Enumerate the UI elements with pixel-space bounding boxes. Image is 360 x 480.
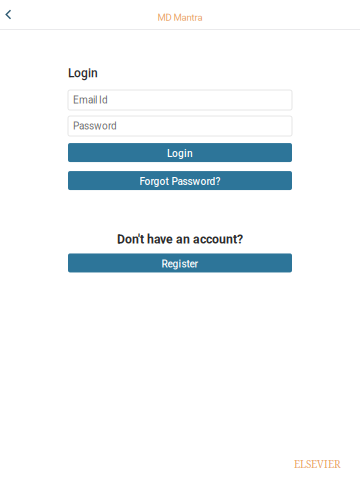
staticText: Email Id — [73, 94, 108, 106]
button[interactable]: Password — [68, 116, 292, 136]
staticText: Register — [161, 258, 198, 270]
staticText: Login — [167, 148, 193, 159]
staticText: ELSEVIER — [294, 457, 341, 471]
button[interactable]: Register — [68, 253, 292, 272]
button[interactable]: Email Id — [68, 90, 292, 110]
button[interactable]: Login — [68, 143, 292, 162]
staticText: Password — [73, 120, 117, 132]
staticText: MD Mantra — [157, 12, 202, 23]
staticText: Don't have an account? — [117, 232, 243, 246]
staticText: Forgot Password? — [139, 176, 220, 187]
button[interactable]: Forgot Password? — [68, 171, 292, 190]
button[interactable]: Back — [0, 0, 16, 29]
staticText: Login — [68, 66, 98, 80]
